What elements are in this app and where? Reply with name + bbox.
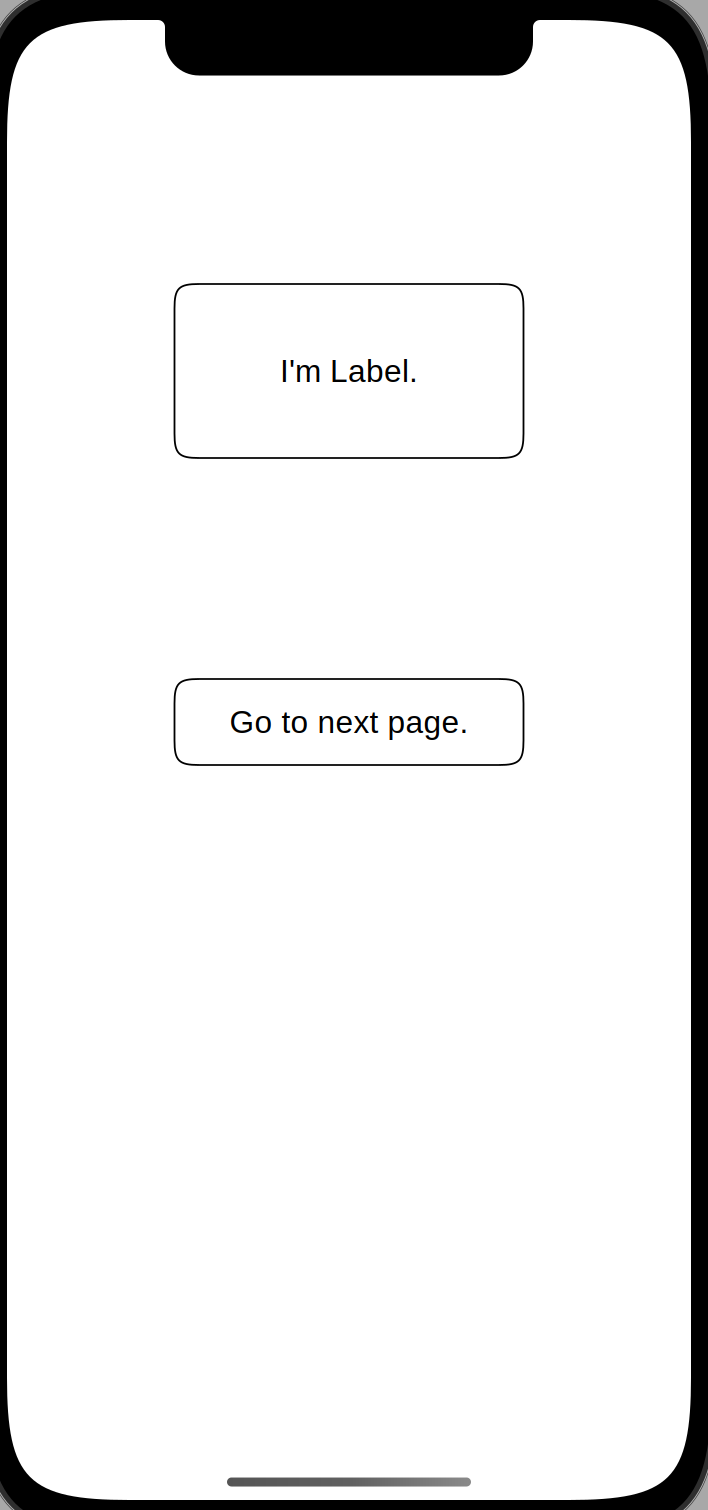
staticText: Go to next page. — [229, 704, 468, 740]
button[interactable]: I'm Label. — [174, 284, 523, 458]
button[interactable]: Go to next page. — [174, 679, 523, 765]
staticText: I'm Label. — [280, 353, 418, 389]
